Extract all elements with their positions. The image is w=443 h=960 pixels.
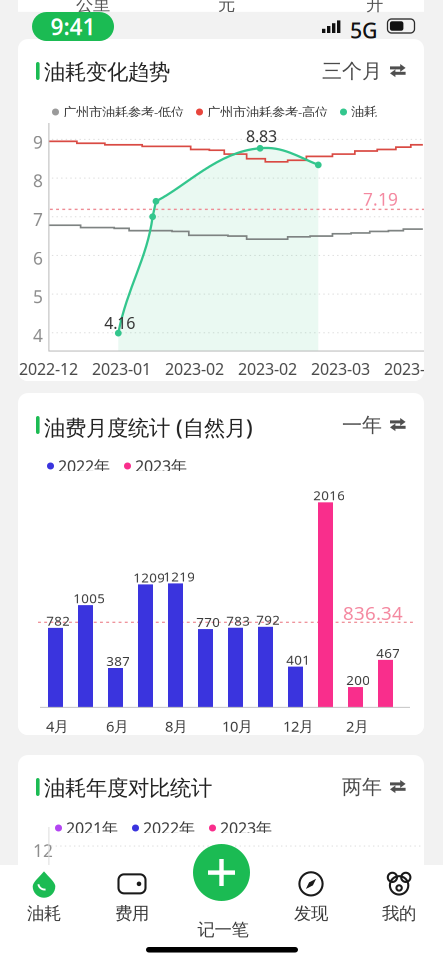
staticText: 12月 xyxy=(283,716,314,736)
staticText: 油耗 xyxy=(351,104,377,120)
staticText: 2016 xyxy=(313,486,345,504)
staticText: 广州市油耗参考-低位 xyxy=(63,103,184,121)
staticText: 2022年 xyxy=(143,817,195,839)
button[interactable]: 一年 xyxy=(302,414,406,436)
staticText: 记一笔 xyxy=(197,919,248,940)
button[interactable]: 记一笔 xyxy=(193,844,250,901)
staticText: 1005 xyxy=(73,589,105,607)
staticText: 公里 xyxy=(76,0,110,15)
button[interactable]: 两年 xyxy=(302,776,406,798)
staticText: 2021年 xyxy=(66,817,118,839)
staticText: 5G xyxy=(350,16,378,44)
staticText: 升 xyxy=(366,0,383,15)
staticText: 三个月 xyxy=(322,59,382,83)
button[interactable]: 发现 xyxy=(267,869,355,925)
button[interactable]: 费用 xyxy=(88,869,176,925)
staticText: 200 xyxy=(346,671,370,689)
staticText: 费用 xyxy=(115,903,149,924)
staticText: 1209 xyxy=(133,568,165,586)
staticText: 油费月度统计 (自然月) xyxy=(44,413,253,441)
staticText: 7 xyxy=(33,208,43,231)
staticText: 2022-12 xyxy=(19,358,78,379)
staticText: 油耗变化趋势 xyxy=(44,59,170,85)
staticText: 2023-04 xyxy=(384,358,443,379)
staticText: 783 xyxy=(226,612,250,629)
staticText: 467 xyxy=(376,644,400,662)
staticText: 8.83 xyxy=(246,125,277,146)
staticText: 9:41 xyxy=(50,11,95,41)
staticText: 2023年 xyxy=(135,455,187,477)
staticText: 8月 xyxy=(165,716,188,736)
staticText: 广州市油耗参考-高位 xyxy=(207,103,328,121)
staticText: 401 xyxy=(286,651,310,668)
staticText: 6月 xyxy=(106,716,129,736)
staticText: 4 xyxy=(33,324,43,347)
staticText: 2023年 xyxy=(220,817,272,839)
staticText: 5 xyxy=(33,285,43,308)
staticText: 1219 xyxy=(163,567,195,585)
staticText: 发现 xyxy=(294,903,328,924)
staticText: 油耗年度对比统计 xyxy=(44,775,212,801)
staticText: 10月 xyxy=(222,716,253,736)
staticText: 836.34 xyxy=(343,600,403,625)
staticText: 我的 xyxy=(382,903,416,924)
staticText: 387 xyxy=(106,652,130,670)
staticText: 782 xyxy=(46,612,70,629)
staticText: 7.19 xyxy=(363,187,398,210)
button[interactable]: 三个月 xyxy=(302,60,406,82)
staticText: 6 xyxy=(33,246,43,269)
staticText: 2023-01 xyxy=(92,358,151,379)
staticText: 9 xyxy=(33,130,43,153)
staticText: 4月 xyxy=(46,716,69,736)
staticText: 2023-03 xyxy=(311,358,370,379)
staticText: 油耗 xyxy=(27,903,61,924)
staticText: 一年 xyxy=(342,413,382,437)
staticText: 8 xyxy=(33,169,43,192)
staticText: 12 xyxy=(33,839,53,862)
button[interactable]: 我的 xyxy=(355,869,443,925)
staticText: 770 xyxy=(196,613,220,631)
staticText: 2022年 xyxy=(58,455,110,477)
staticText: 2023-02 xyxy=(165,358,224,379)
staticText: 4.16 xyxy=(104,312,135,333)
button[interactable]: 油耗 xyxy=(0,869,88,925)
staticText: 两年 xyxy=(342,775,382,799)
staticText: 2月 xyxy=(346,716,369,736)
staticText: 元 xyxy=(218,0,235,15)
staticText: 2023-02 xyxy=(238,358,297,379)
staticText: 792 xyxy=(256,611,280,628)
